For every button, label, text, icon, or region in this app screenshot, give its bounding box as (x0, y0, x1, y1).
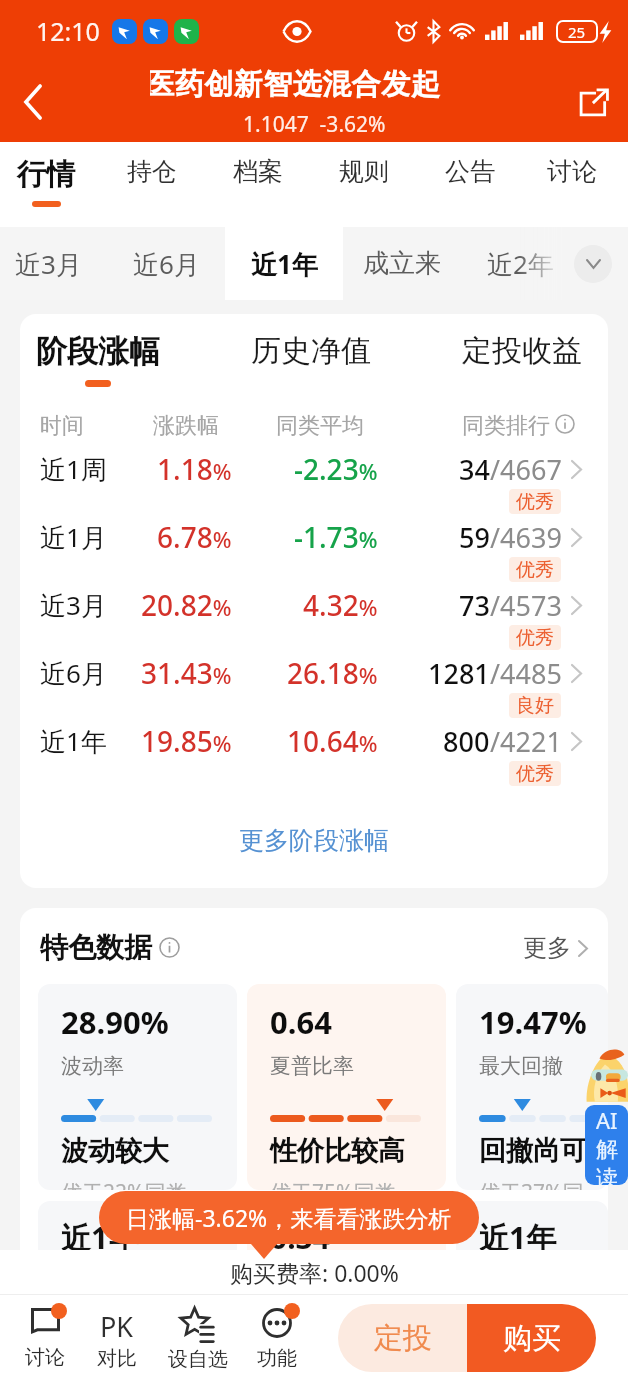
staticText: 成立来 (363, 247, 441, 280)
staticText: 1.1047 -3.62% (243, 110, 386, 139)
staticText: 飞赢医药创新智选混合发起 (150, 66, 440, 103)
button[interactable]: 持仓 (99, 142, 205, 227)
staticText: 优于75%同类 (270, 1178, 396, 1190)
staticText: 近6月 (40, 655, 107, 691)
staticText: 19.47% (479, 1001, 587, 1043)
button[interactable]: 阶段涨幅 (36, 332, 160, 387)
staticText: /4573 (490, 587, 562, 624)
staticText: 性价比较高 (270, 1134, 405, 1168)
button[interactable]: 规则 (311, 142, 417, 227)
button[interactable]: 定投 (338, 1304, 467, 1372)
button[interactable]: 近1周 (20, 446, 608, 514)
staticText: 最大回撤 (479, 1053, 563, 1079)
button[interactable]: Back (0, 62, 66, 142)
button[interactable]: 近1年 (38, 1201, 237, 1281)
button[interactable]: 近3月 (20, 582, 608, 650)
staticText: 回撤尚可 (479, 1134, 587, 1168)
staticText: 25 (568, 22, 586, 42)
staticText: 近1周 (40, 451, 107, 487)
staticText: 更多 (523, 933, 571, 963)
button[interactable]: 近6月 (20, 650, 608, 718)
button[interactable]: 档案 (205, 142, 311, 227)
button[interactable]: 28.90% (38, 984, 237, 1190)
button[interactable]: 定投收益 (462, 332, 582, 370)
button[interactable]: 讨论 (523, 142, 621, 227)
button[interactable]: 讨论 (1, 1295, 89, 1380)
staticText: AI (596, 1105, 618, 1135)
button[interactable]: 0.34 (247, 1201, 446, 1281)
staticText: 行情 (17, 156, 75, 193)
button[interactable]: 近3月 (0, 227, 107, 300)
staticText: 6.78% (157, 518, 232, 556)
button[interactable]: 0.64 (247, 984, 446, 1190)
staticText: 档案 (233, 156, 283, 187)
staticText: 讨论 (25, 1345, 65, 1370)
staticText: 近1年 (40, 723, 107, 759)
staticText: /4485 (490, 655, 562, 692)
button[interactable]: PK (73, 1295, 161, 1380)
staticText: 59 (459, 519, 490, 556)
staticText: 优秀 (516, 762, 554, 785)
staticText: 优秀 (516, 490, 554, 513)
button[interactable]: More periods (574, 245, 612, 283)
staticText: 近3月 (15, 246, 82, 282)
button[interactable]: 近2年 (461, 227, 579, 300)
staticText: 34 (459, 451, 490, 488)
staticText: 规则 (339, 156, 389, 187)
button[interactable]: Share (558, 62, 628, 142)
staticText: -2.23% (294, 450, 378, 488)
button[interactable]: AI analysis (585, 1105, 628, 1185)
staticText: 800 (443, 723, 490, 760)
button[interactable]: 更多 (523, 933, 588, 963)
staticText: 波动较大 (61, 1134, 169, 1168)
button[interactable]: 近6月 (107, 227, 225, 300)
staticText: 特色数据 (40, 930, 152, 965)
button[interactable]: 行情 (0, 142, 99, 227)
staticText: 夏普比率 (270, 1053, 354, 1079)
staticText: 涨跌幅 (153, 412, 219, 436)
staticText: 优于22%同类 (61, 1178, 187, 1190)
button[interactable]: 飞赢医药创新智选混合发起 (150, 66, 474, 104)
button[interactable]: 历史净值 (251, 332, 371, 370)
staticText: 功能 (257, 1346, 297, 1371)
button[interactable]: 设自选 (154, 1295, 242, 1380)
button[interactable]: 日涨幅-3.62%，来看看涨跌分析 (99, 1191, 479, 1244)
button[interactable]: 成立来 (343, 227, 461, 300)
staticText: 读 (596, 1165, 618, 1185)
button[interactable]: 近1年 (20, 718, 608, 786)
staticText: 购买 (503, 1320, 561, 1357)
button[interactable]: 更多阶段涨幅 (20, 825, 608, 856)
staticText: -1.73% (294, 518, 378, 556)
staticText: /4667 (490, 451, 562, 488)
staticText: 设自选 (168, 1347, 228, 1372)
button[interactable]: 购买 (467, 1304, 596, 1372)
button[interactable]: 近1月 (20, 514, 608, 582)
staticText: 阶段涨幅 (36, 332, 160, 371)
staticText: /4221 (490, 723, 562, 760)
staticText: 持仓 (127, 156, 177, 187)
staticText: 定投收益 (462, 332, 582, 370)
staticText: 优秀 (516, 558, 554, 581)
staticText: 同类排行 (462, 412, 550, 436)
staticText: 26.18% (287, 654, 378, 692)
staticText: 优于37%同类 (479, 1178, 596, 1190)
staticText: 历史净值 (251, 332, 371, 370)
staticText: 良好 (516, 694, 554, 717)
staticText: 时间 (40, 412, 84, 436)
button[interactable]: 19.47% (456, 984, 608, 1190)
staticText: 73 (459, 587, 490, 624)
staticText: 4.32% (303, 586, 378, 624)
staticText: 日涨幅-3.62%，来看看涨跌分析 (126, 1202, 452, 1233)
staticText: 12:10 (36, 14, 100, 48)
staticText: 近1年 (479, 1217, 557, 1258)
staticText: 近1年 (61, 1217, 139, 1258)
staticText: 28.90% (61, 1001, 169, 1043)
button[interactable]: 功能 (233, 1295, 321, 1380)
staticText: 1281 (428, 655, 490, 692)
staticText: 对比 (97, 1346, 137, 1371)
staticText: 定投 (374, 1320, 432, 1357)
staticText: 波动率 (61, 1053, 124, 1079)
button[interactable]: 近1年 (456, 1201, 608, 1281)
button[interactable]: 近1年 (225, 227, 343, 300)
button[interactable]: 公告 (417, 142, 523, 227)
